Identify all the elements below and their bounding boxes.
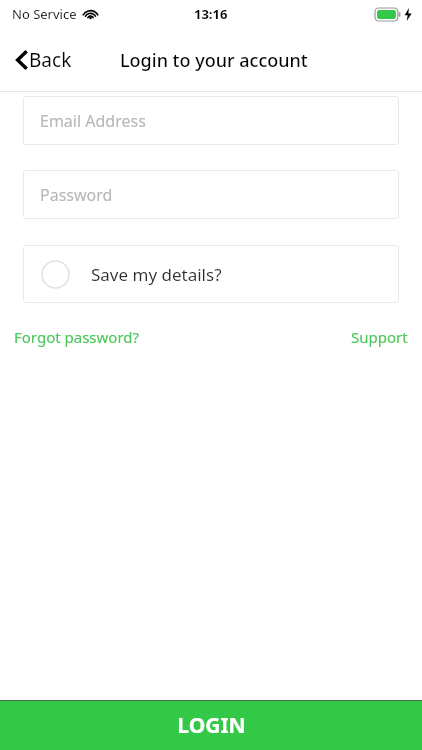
staticText: Back (29, 47, 72, 73)
button[interactable]: Support (348, 323, 411, 351)
staticText: Email Address (40, 110, 146, 132)
staticText: Password (40, 184, 113, 206)
staticText: Save my details? (91, 263, 222, 286)
staticText: Login to your account (120, 48, 308, 73)
button[interactable]: Email Address (23, 96, 399, 145)
button[interactable]: Password (23, 170, 399, 219)
staticText: Support (351, 327, 408, 347)
button[interactable]: Back (14, 41, 74, 79)
staticText: Forgot password? (14, 327, 140, 347)
button[interactable]: Save my details? (23, 245, 399, 303)
staticText: No Service (12, 5, 77, 23)
staticText: LOGIN (177, 711, 246, 740)
button[interactable]: Forgot password? (11, 323, 143, 351)
staticText: 13:16 (194, 5, 228, 23)
button[interactable]: LOGIN (0, 700, 422, 750)
